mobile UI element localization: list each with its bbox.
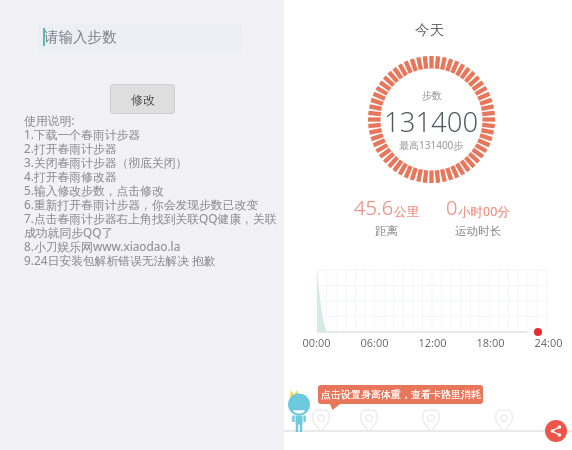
button[interactable]: Milestone xyxy=(358,409,380,433)
staticText: 运动时长 xyxy=(455,224,501,238)
staticText: 45.6 xyxy=(354,194,394,221)
staticText: 点击设置身高体重，查看卡路里消耗 xyxy=(321,388,481,401)
staticText: 131400 xyxy=(384,103,479,140)
button[interactable]: Milestone xyxy=(420,409,442,433)
button[interactable]: Milestone xyxy=(493,409,515,433)
staticText: 步数 xyxy=(422,89,442,102)
button[interactable]: 请输入步数 xyxy=(38,24,242,51)
staticText: 18:00 xyxy=(476,335,505,350)
staticText: 使用说明: 1.下载一个春雨计步器 2.打开春雨计步器 3.关闭春雨计步器（彻底… xyxy=(24,112,277,268)
button[interactable]: 修改 xyxy=(110,84,175,114)
staticText: 小时00分 xyxy=(458,203,510,220)
staticText: 00:00 xyxy=(302,335,331,350)
staticText: 24:00 xyxy=(534,335,563,350)
staticText: 修改 xyxy=(131,92,155,107)
button[interactable]: Share xyxy=(545,420,567,442)
staticText: 公里 xyxy=(394,204,419,220)
staticText: 0 xyxy=(446,194,458,221)
staticText: 距离 xyxy=(375,224,398,238)
staticText: 今天 xyxy=(415,21,444,39)
button[interactable]: 点击设置身高体重，查看卡路里消耗 xyxy=(318,385,483,404)
staticText: 06:00 xyxy=(360,335,389,350)
button[interactable]: Milestone xyxy=(310,409,332,433)
staticText: 最高131400步 xyxy=(399,138,464,152)
staticText: 12:00 xyxy=(418,335,447,350)
staticText: 请输入步数 xyxy=(44,28,117,46)
